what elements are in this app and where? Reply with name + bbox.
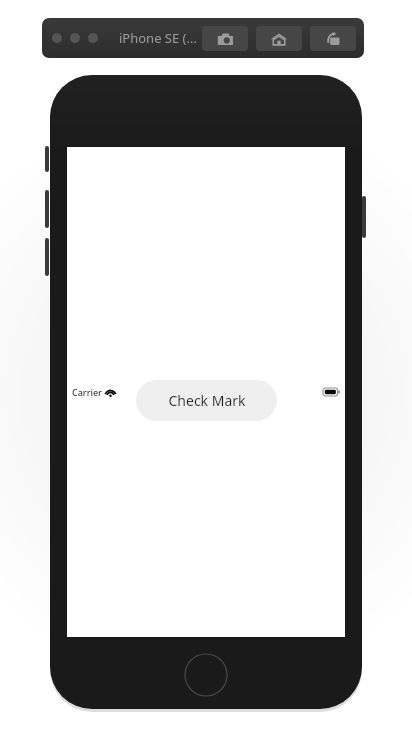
button[interactable]: Close	[52, 33, 62, 43]
button[interactable]: Zoom	[88, 33, 98, 43]
staticText: 1:53 AM	[189, 386, 224, 398]
button[interactable]: Check Mark	[136, 380, 277, 421]
button[interactable]: Screenshot	[202, 26, 248, 51]
button[interactable]: Minimize	[70, 33, 80, 43]
staticText: Carrier	[72, 386, 102, 398]
staticText: iPhone SE (...	[119, 29, 197, 47]
button[interactable]: Share	[310, 26, 356, 51]
button[interactable]: Home	[256, 26, 302, 51]
button[interactable]: Home button	[184, 653, 228, 697]
staticText: Check Mark	[168, 391, 246, 410]
